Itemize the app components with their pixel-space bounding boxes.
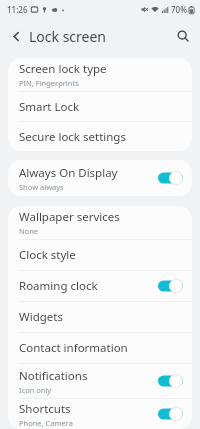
button[interactable]: Screen lock type (8, 58, 192, 91)
button[interactable]: Widgets (8, 302, 192, 332)
staticText: Icon only (19, 385, 52, 395)
staticText: Shortcuts (19, 401, 71, 417)
button[interactable]: Roaming clock (8, 271, 192, 301)
button[interactable]: Contact information (8, 333, 192, 363)
button[interactable]: Smart Lock (8, 92, 192, 121)
staticText: Notifications (19, 368, 88, 384)
staticText: Roaming clock (19, 278, 98, 294)
staticText: Widgets (19, 309, 63, 325)
staticText: Lock screen (29, 27, 107, 46)
staticText: Secure lock settings (19, 129, 126, 145)
staticText: Show always (19, 182, 64, 192)
staticText: Screen lock type (19, 61, 107, 77)
button[interactable]: Secure lock settings (8, 122, 192, 151)
staticText: Phone, Camera (19, 418, 73, 428)
button[interactable]: Always On Display (8, 160, 192, 196)
button[interactable]: Back (4, 24, 28, 48)
button[interactable]: Clock style (8, 240, 192, 270)
staticText: 70% (171, 4, 187, 15)
staticText: Clock style (19, 247, 76, 263)
staticText: Wallpaper services (19, 209, 120, 225)
staticText: None (19, 226, 39, 236)
staticText: Contact information (19, 340, 128, 356)
staticText: PIN, Fingerprints (19, 78, 79, 88)
button[interactable]: Shortcuts (8, 399, 192, 429)
button[interactable]: Wallpaper services (8, 206, 192, 239)
button[interactable]: Notifications (8, 364, 192, 398)
staticText: Always On Display (19, 165, 118, 181)
staticText: 11:26 (7, 4, 28, 15)
button[interactable]: Search (171, 24, 195, 48)
staticText: Smart Lock (19, 99, 80, 115)
